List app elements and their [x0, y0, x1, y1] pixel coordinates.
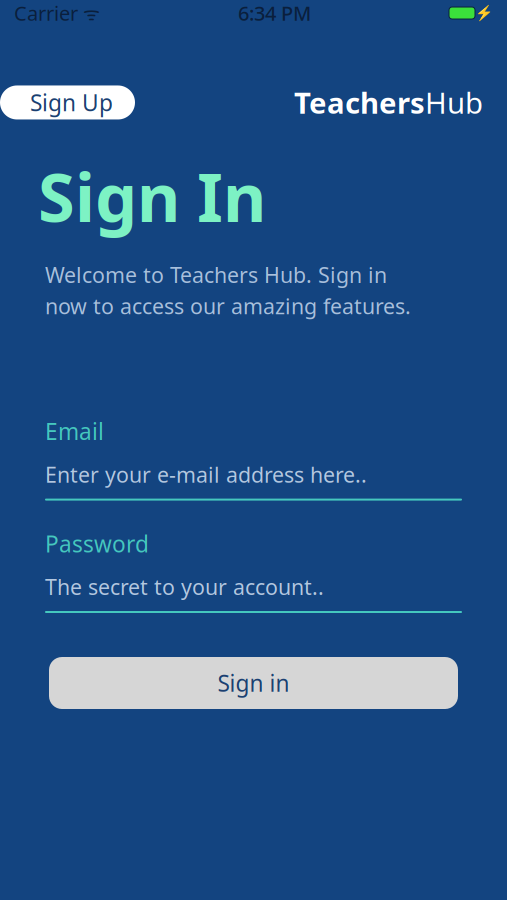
staticText: Sign Up — [30, 87, 113, 117]
staticText: Sign in — [217, 668, 289, 698]
staticText: Password — [45, 529, 149, 559]
staticText: 6:34 PM — [238, 0, 311, 26]
button[interactable]: Sign in — [49, 657, 458, 709]
staticText: Email — [45, 416, 104, 446]
staticText: Hub — [425, 83, 483, 122]
staticText: now to access our amazing features. — [45, 292, 411, 320]
button[interactable]: Sign Up — [0, 85, 135, 119]
staticText: The secret to your account.. — [45, 573, 324, 601]
staticText: Welcome to Teachers Hub. Sign in — [45, 260, 387, 289]
staticText: Teachers — [294, 83, 425, 122]
staticText: ⚡ — [475, 5, 493, 21]
staticText: Carrier — [14, 0, 78, 26]
staticText: ᯤ — [78, 1, 100, 25]
staticText: Enter your e-mail address here.. — [45, 460, 367, 488]
staticText: Sign In — [38, 152, 266, 240]
